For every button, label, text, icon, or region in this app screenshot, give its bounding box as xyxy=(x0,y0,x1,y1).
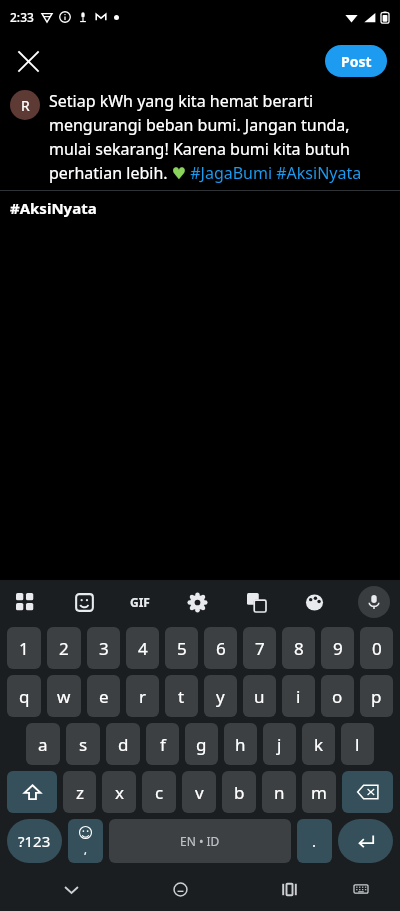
button[interactable]: GIF xyxy=(127,589,153,615)
staticText: x xyxy=(115,781,124,804)
button[interactable]: Emoji xyxy=(68,819,103,863)
staticText: l xyxy=(355,733,360,756)
staticText: 1 xyxy=(19,637,29,660)
button[interactable]: 9 xyxy=(321,627,354,669)
staticText: EN • ID xyxy=(180,833,220,849)
button[interactable]: . xyxy=(297,819,332,863)
button[interactable]: Recents xyxy=(269,869,309,909)
button[interactable]: Home xyxy=(160,869,200,909)
staticText: 7 xyxy=(255,637,265,660)
button[interactable]: g xyxy=(185,723,218,765)
button[interactable]: t xyxy=(165,675,198,717)
staticText: e xyxy=(99,685,109,708)
button[interactable]: EN • ID xyxy=(109,819,291,863)
button[interactable]: n xyxy=(262,771,296,813)
button[interactable]: s xyxy=(66,723,100,765)
button[interactable]: Post xyxy=(325,45,387,77)
staticText: z xyxy=(76,781,84,804)
button[interactable]: Themes xyxy=(299,587,329,617)
staticText: v xyxy=(195,781,204,804)
staticText: u xyxy=(254,685,265,708)
staticText: s xyxy=(79,733,88,756)
staticText: 4 xyxy=(138,637,148,660)
staticText: g xyxy=(196,733,207,756)
staticText: 3 xyxy=(99,637,109,660)
button[interactable]: Voice input xyxy=(358,586,390,618)
staticText: 0 xyxy=(372,637,382,660)
button[interactable]: y xyxy=(204,675,237,717)
button[interactable]: 8 xyxy=(282,627,315,669)
staticText: Setiap kWh yang kita hemat berarti mengu… xyxy=(49,90,390,184)
button[interactable]: x xyxy=(102,771,136,813)
button[interactable]: v xyxy=(182,771,216,813)
button[interactable]: Setiap kWh yang kita hemat berarti mengu… xyxy=(49,90,390,184)
button[interactable]: 2 xyxy=(47,627,81,669)
button[interactable]: f xyxy=(146,723,179,765)
button[interactable]: Enter xyxy=(338,819,393,863)
button[interactable]: h xyxy=(224,723,257,765)
button[interactable]: 6 xyxy=(204,627,237,669)
button[interactable]: k xyxy=(302,723,335,765)
button[interactable]: p xyxy=(360,675,393,717)
staticText: , xyxy=(84,842,87,857)
staticText: R xyxy=(21,96,30,115)
staticText: k xyxy=(314,733,324,756)
button[interactable]: a xyxy=(26,723,60,765)
button[interactable]: Stickers xyxy=(69,587,99,617)
button[interactable]: b xyxy=(222,771,256,813)
button[interactable]: 4 xyxy=(126,627,159,669)
staticText: t xyxy=(178,685,185,708)
staticText: 9 xyxy=(333,637,343,660)
staticText: 5 xyxy=(177,637,187,660)
button[interactable]: 1 xyxy=(7,627,41,669)
staticText: i xyxy=(296,685,301,708)
staticText: Post xyxy=(341,52,372,71)
staticText: j xyxy=(277,733,282,756)
staticText: 2 xyxy=(59,637,69,660)
button[interactable]: r xyxy=(126,675,159,717)
staticText: r xyxy=(139,685,147,708)
button[interactable]: Close xyxy=(8,41,48,81)
staticText: 2:33 xyxy=(10,9,34,25)
staticText: b xyxy=(234,781,245,804)
button[interactable]: w xyxy=(47,675,81,717)
staticText: #AksiNyata xyxy=(10,198,97,218)
button[interactable]: Apps xyxy=(10,587,40,617)
button[interactable]: i xyxy=(282,675,315,717)
staticText: . xyxy=(312,831,317,851)
staticText: d xyxy=(118,733,129,756)
button[interactable]: e xyxy=(87,675,120,717)
button[interactable]: 7 xyxy=(243,627,276,669)
button[interactable]: u xyxy=(243,675,276,717)
staticText: y xyxy=(216,685,225,708)
button[interactable]: ?123 xyxy=(7,819,62,863)
staticText: a xyxy=(38,733,48,756)
button[interactable]: z xyxy=(63,771,96,813)
button[interactable]: #AksiNyata xyxy=(0,191,400,225)
button[interactable]: Switch keyboard xyxy=(344,872,378,906)
staticText: GIF xyxy=(130,594,150,610)
button[interactable]: R xyxy=(10,90,40,120)
button[interactable]: Hide keyboard xyxy=(51,869,91,909)
staticText: q xyxy=(19,685,30,708)
button[interactable]: o xyxy=(321,675,354,717)
staticText: f xyxy=(160,733,166,756)
button[interactable]: Translate xyxy=(241,587,271,617)
button[interactable]: d xyxy=(106,723,140,765)
button[interactable]: m xyxy=(302,771,336,813)
button[interactable]: Shift xyxy=(7,771,57,813)
staticText: o xyxy=(332,685,343,708)
button[interactable]: 5 xyxy=(165,627,198,669)
button[interactable]: c xyxy=(142,771,176,813)
button[interactable]: 3 xyxy=(87,627,120,669)
button[interactable]: 0 xyxy=(360,627,393,669)
button[interactable]: q xyxy=(7,675,41,717)
staticText: h xyxy=(235,733,246,756)
staticText: 8 xyxy=(294,637,304,660)
button[interactable]: Backspace xyxy=(342,771,393,813)
button[interactable]: Settings xyxy=(182,587,212,617)
staticText: c xyxy=(155,781,164,804)
button[interactable]: j xyxy=(263,723,296,765)
button[interactable]: l xyxy=(341,723,374,765)
staticText: ?123 xyxy=(18,831,51,851)
